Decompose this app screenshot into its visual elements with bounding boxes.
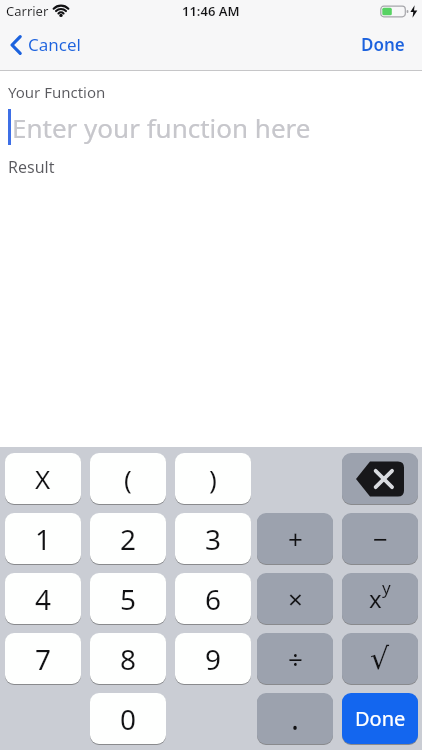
button[interactable]: Done [342,693,418,744]
staticText: 0 [120,700,137,738]
staticText: Carrier [6,2,49,20]
button[interactable]: 1 [5,513,81,564]
staticText: 3 [205,520,222,558]
button[interactable]: Cancel [10,33,81,56]
button[interactable]: × [257,573,333,624]
button[interactable]: 9 [175,633,251,684]
staticText: 11:46 AM [182,2,240,20]
button[interactable]: − [342,513,418,564]
staticText: Done [355,705,406,732]
staticText: 8 [120,640,137,678]
staticText: Done [361,33,405,56]
staticText: 5 [120,580,137,618]
staticText: X [35,461,51,496]
staticText: Enter your function here [12,110,311,145]
button[interactable]: 2 [90,513,166,564]
button[interactable]: 6 [175,573,251,624]
button[interactable]: 7 [5,633,81,684]
staticText: x [369,582,382,615]
staticText: ) [209,461,217,496]
button[interactable]: ) [175,453,251,504]
button[interactable]: X [5,453,81,504]
button[interactable]: Done [361,33,405,56]
button[interactable]: ÷ [257,633,333,684]
staticText: 6 [205,580,222,618]
staticText: Cancel [28,33,81,56]
staticText: + [288,521,303,556]
button[interactable]: 4 [5,573,81,624]
staticText: ( [124,461,132,496]
staticText: 9 [205,640,222,678]
staticText: 4 [35,580,52,618]
button[interactable]: √ [342,633,418,684]
staticText: . [291,698,300,739]
button[interactable]: 0 [90,693,166,744]
button[interactable]: 5 [90,573,166,624]
button[interactable]: 3 [175,513,251,564]
button[interactable]: + [257,513,333,564]
staticText: 7 [35,640,52,678]
button[interactable]: . [257,693,333,744]
staticText: ÷ [288,641,303,676]
staticText: − [373,521,388,556]
staticText: Your Function [8,82,106,102]
button[interactable]: ( [90,453,166,504]
staticText: × [288,581,303,616]
button[interactable] [342,453,418,504]
staticText: √ [370,641,390,676]
staticText: Result [8,156,55,178]
button[interactable]: 8 [90,633,166,684]
button[interactable]: x [342,573,418,624]
staticText: 2 [120,520,137,558]
staticText: y [382,576,391,599]
staticText: 1 [35,520,52,558]
